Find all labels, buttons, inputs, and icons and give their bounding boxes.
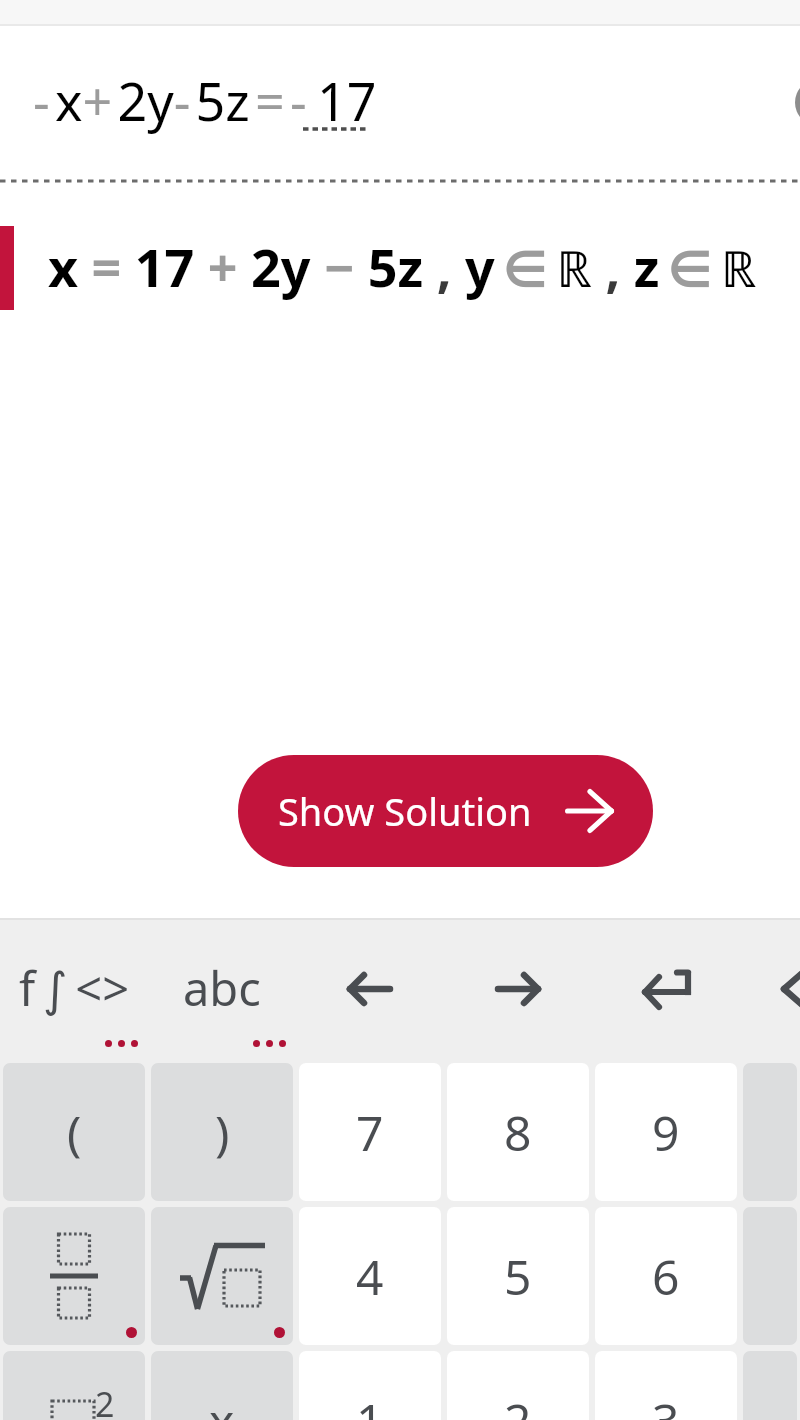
button[interactable]: 5 (447, 1207, 589, 1345)
button[interactable]: 3 (595, 1351, 737, 1420)
staticText: 9 (652, 1100, 680, 1165)
button[interactable]: ) (151, 1063, 293, 1201)
staticText: 7 (356, 1100, 384, 1165)
button[interactable]: Squared (3, 1351, 145, 1420)
button[interactable]: Fraction (3, 1207, 145, 1345)
button[interactable]: 1 (299, 1351, 441, 1420)
staticText: 2 (95, 1381, 115, 1420)
staticText: 1 (356, 1388, 384, 1420)
staticText: 4 (356, 1244, 384, 1309)
staticText: 5 (504, 1244, 532, 1309)
staticText: 6 (652, 1244, 680, 1309)
button[interactable]: 7 (299, 1063, 441, 1201)
button[interactable]: Square root (151, 1207, 293, 1345)
staticText: abc (183, 956, 261, 1020)
button[interactable]: Enter (592, 918, 740, 1060)
staticText: 8 (504, 1100, 532, 1165)
button[interactable]: Backspace (740, 918, 800, 1060)
staticText: ) (215, 1100, 230, 1165)
button[interactable]: f ∫ <> (0, 918, 148, 1060)
button[interactable]: Show Solution (238, 755, 653, 867)
staticText: Show Solution (278, 785, 532, 837)
staticText: ( (67, 1100, 82, 1165)
button[interactable]: Clear (795, 79, 800, 126)
button[interactable]: Move right (444, 918, 592, 1060)
button[interactable]: 8 (447, 1063, 589, 1201)
button[interactable]: 4 (299, 1207, 441, 1345)
staticText: 2 (504, 1388, 532, 1420)
staticText: x (209, 1388, 235, 1420)
staticText: x = 17 + 2y − 5z , y ∈ ℝ , z ∈ ℝ (48, 231, 757, 302)
staticText: 3 (652, 1388, 680, 1420)
button[interactable]: 6 (595, 1207, 737, 1345)
button[interactable]: ( (3, 1063, 145, 1201)
button[interactable]: Move left (296, 918, 444, 1060)
staticText: - x+ 2y- 5z = - 17 (33, 65, 377, 136)
button[interactable]: 9 (595, 1063, 737, 1201)
button[interactable]: x (151, 1351, 293, 1420)
button[interactable]: abc (148, 918, 296, 1060)
button[interactable]: 2 (447, 1351, 589, 1420)
staticText: f ∫ <> (19, 956, 130, 1020)
